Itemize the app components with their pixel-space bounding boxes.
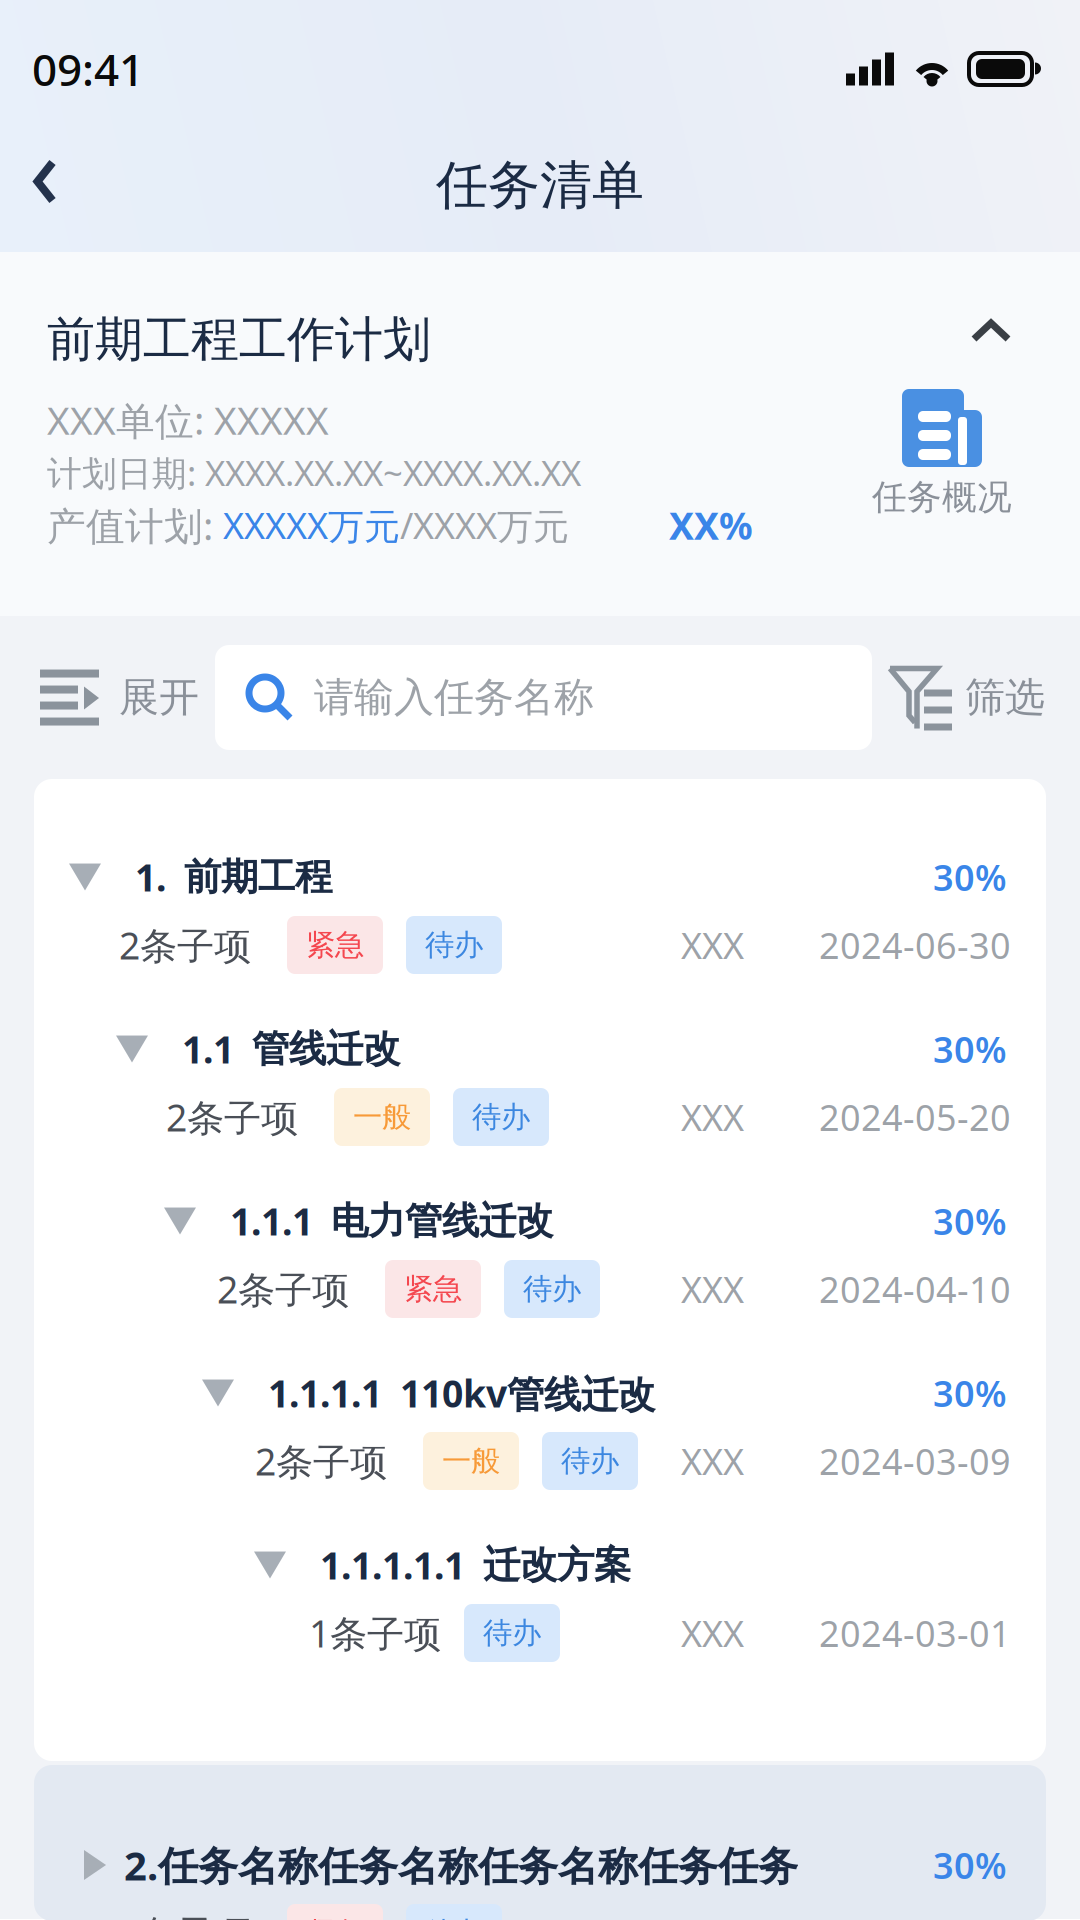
staticText: 1.1.1.1.1 — [320, 1540, 465, 1590]
button[interactable]: 筛选 — [872, 642, 1059, 752]
staticText: 产值计划: — [47, 499, 223, 551]
staticText: 请输入任务名称 — [314, 673, 594, 722]
staticText: 2024-04-10 — [819, 1265, 1011, 1313]
staticText: XXX — [681, 1609, 744, 1657]
button[interactable]: Collapse — [942, 311, 1011, 351]
staticText: 2024-03-01 — [819, 1609, 1011, 1657]
staticText: 09:41 — [32, 40, 144, 98]
staticText: 紧急 — [306, 927, 364, 963]
staticText: 30% — [933, 1369, 1007, 1417]
staticText: 2条子项 — [119, 1908, 251, 1920]
staticText: 管线迁改 — [252, 1026, 400, 1072]
staticText: 任务概况 — [872, 476, 1012, 519]
staticText: 一般 — [442, 1443, 500, 1479]
staticText: 待办 — [523, 1271, 581, 1307]
staticText: 30% — [933, 1025, 1007, 1073]
staticText: 110kv管线迁改 — [400, 1368, 655, 1418]
staticText: 一般 — [353, 1099, 411, 1135]
staticText: 计划日期: XXXX.XX.XX~XXXX.XX.XX — [47, 449, 581, 495]
staticText: 1.1 — [182, 1024, 234, 1074]
staticText: 前期工程工作计划 — [47, 310, 431, 369]
staticText: 1.1.1.1 — [268, 1368, 382, 1418]
staticText: 待办 — [472, 1099, 530, 1135]
staticText: 前期工程 — [184, 854, 332, 900]
button[interactable]: Back — [0, 126, 89, 236]
staticText: 待办 — [425, 1915, 483, 1920]
staticText: 2024-03-09 — [819, 1437, 1011, 1485]
staticText: XXXXX万元 — [223, 501, 400, 549]
staticText: 30% — [933, 1841, 1007, 1889]
button[interactable]: 展开 — [0, 642, 202, 752]
staticText: 待办 — [483, 1615, 541, 1651]
staticText: 1.1.1 — [230, 1196, 313, 1246]
staticText: XXX单位: XXXXX — [47, 394, 329, 445]
staticText: 展开 — [119, 673, 199, 722]
staticText: 1条子项 — [309, 1608, 441, 1658]
staticText: 2条子项 — [166, 1092, 298, 1142]
staticText: 2.任务名称任务名称任务名称任务任务 — [124, 1838, 798, 1891]
staticText: 电力管线迁改 — [331, 1198, 553, 1244]
staticText: XX% — [669, 500, 753, 550]
staticText: 2条子项 — [119, 920, 251, 970]
staticText: 筛选 — [965, 673, 1045, 722]
staticText: 紧急 — [306, 1915, 364, 1920]
staticText: 30% — [933, 853, 1007, 901]
staticText: XXX — [681, 1265, 744, 1313]
staticText: 待办 — [425, 927, 483, 963]
staticText: 2条子项 — [217, 1264, 349, 1314]
staticText: 待办 — [561, 1443, 619, 1479]
staticText: 30% — [933, 1197, 1007, 1245]
staticText: 任务清单 — [436, 154, 644, 217]
staticText: 2024-06-30 — [819, 921, 1011, 969]
staticText: 迁改方案 — [483, 1542, 631, 1588]
staticText: /XXXX万元 — [400, 501, 569, 549]
staticText: 紧急 — [404, 1271, 462, 1307]
staticText: XXX — [681, 1437, 744, 1485]
staticText: XXX — [681, 921, 744, 969]
staticText: 1. — [135, 852, 166, 902]
staticText: 2条子项 — [255, 1436, 387, 1486]
button[interactable]: 任务概况 — [871, 351, 1011, 519]
staticText: 2024-05-20 — [819, 1093, 1011, 1141]
staticText: XXX — [681, 1093, 744, 1141]
